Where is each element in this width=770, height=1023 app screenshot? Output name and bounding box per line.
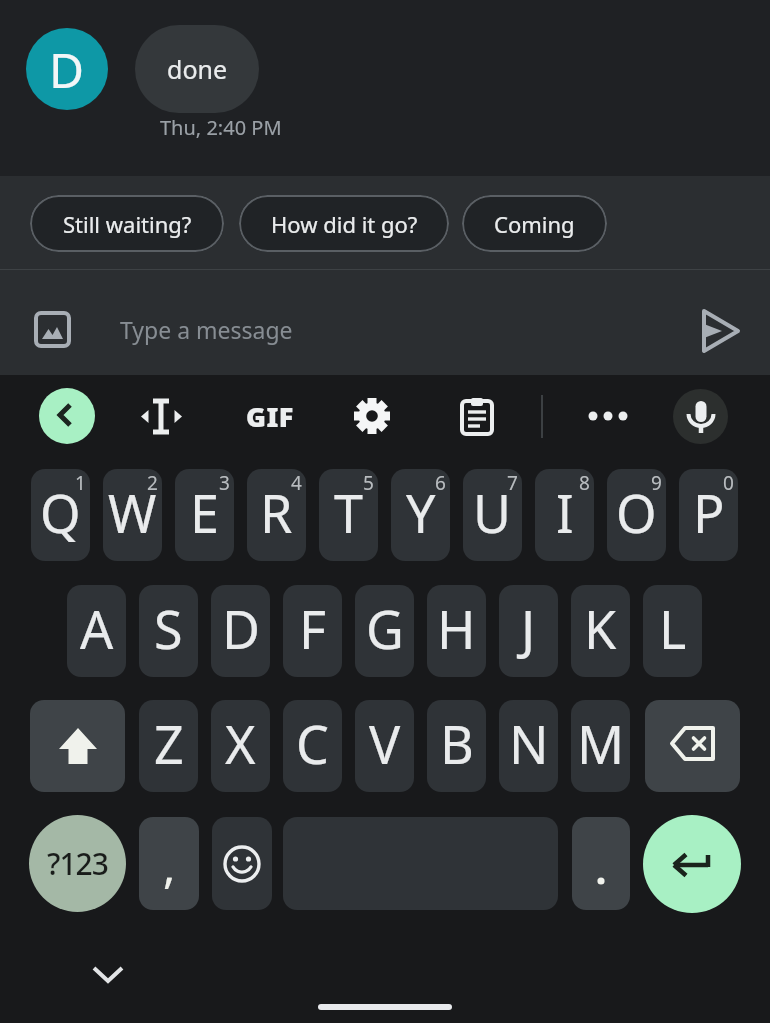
- button[interactable]: [643, 815, 741, 913]
- button[interactable]: [212, 817, 272, 910]
- staticText: done: [167, 52, 228, 86]
- button[interactable]: F: [283, 585, 342, 677]
- staticText: C: [296, 708, 329, 779]
- button[interactable]: G: [355, 585, 414, 677]
- staticText: E: [190, 477, 219, 548]
- button[interactable]: [80, 958, 135, 998]
- button[interactable]: J: [499, 585, 558, 677]
- button[interactable]: U: [463, 469, 522, 561]
- button[interactable]: [30, 700, 125, 792]
- button[interactable]: [24, 301, 81, 358]
- staticText: G: [366, 593, 404, 664]
- staticText: J: [521, 593, 536, 664]
- button[interactable]: Y: [391, 469, 450, 561]
- button[interactable]: X: [211, 700, 270, 792]
- staticText: T: [334, 477, 363, 548]
- button[interactable]: [39, 388, 95, 444]
- button[interactable]: C: [283, 700, 342, 792]
- button[interactable]: W: [103, 469, 162, 561]
- button[interactable]: Coming: [462, 195, 607, 252]
- staticText: S: [154, 593, 183, 664]
- button[interactable]: Z: [139, 700, 198, 792]
- staticText: N: [509, 708, 549, 779]
- staticText: P: [693, 477, 725, 548]
- staticText: 8: [579, 470, 590, 496]
- button[interactable]: L: [643, 585, 702, 677]
- button[interactable]: Q: [31, 469, 90, 561]
- staticText: 5: [363, 470, 374, 496]
- staticText: ?123: [47, 843, 108, 884]
- staticText: 0: [723, 470, 734, 496]
- button[interactable]: S: [139, 585, 198, 677]
- button[interactable]: Still waiting?: [30, 195, 224, 252]
- staticText: Z: [154, 708, 184, 779]
- staticText: 9: [651, 470, 662, 496]
- staticText: V: [369, 708, 401, 779]
- button[interactable]: [572, 817, 630, 910]
- button[interactable]: ?123: [29, 815, 126, 912]
- button[interactable]: [673, 389, 728, 444]
- staticText: D: [222, 593, 260, 664]
- button[interactable]: [581, 389, 635, 443]
- staticText: W: [108, 477, 157, 548]
- button[interactable]: R: [247, 469, 306, 561]
- staticText: 7: [507, 470, 518, 496]
- staticText: U: [473, 477, 512, 548]
- button[interactable]: [690, 302, 746, 358]
- button[interactable]: [135, 389, 189, 443]
- button[interactable]: [450, 389, 504, 443]
- staticText: Still waiting?: [63, 209, 192, 239]
- staticText: 2: [147, 470, 158, 496]
- button[interactable]: E: [175, 469, 234, 561]
- staticText: R: [260, 477, 293, 548]
- button[interactable]: B: [427, 700, 486, 792]
- staticText: K: [584, 593, 617, 664]
- button[interactable]: D: [211, 585, 270, 677]
- button[interactable]: N: [499, 700, 558, 792]
- button[interactable]: H: [427, 585, 486, 677]
- button[interactable]: How did it go?: [239, 195, 449, 252]
- staticText: How did it go?: [271, 209, 418, 239]
- staticText: Thu, 2:40 PM: [160, 114, 282, 141]
- staticText: Coming: [494, 209, 575, 239]
- staticText: 1: [75, 470, 86, 496]
- button[interactable]: T: [319, 469, 378, 561]
- button[interactable]: A: [67, 585, 126, 677]
- staticText: D: [49, 37, 85, 102]
- staticText: O: [616, 477, 657, 548]
- button[interactable]: GIF: [240, 390, 300, 442]
- staticText: X: [225, 708, 256, 779]
- staticText: L: [659, 593, 687, 664]
- button[interactable]: done: [135, 25, 259, 113]
- button[interactable]: M: [571, 700, 630, 792]
- staticText: A: [80, 593, 114, 664]
- staticText: H: [437, 593, 476, 664]
- staticText: Q: [40, 477, 81, 548]
- staticText: 6: [435, 470, 446, 496]
- button[interactable]: ,: [139, 817, 199, 910]
- staticText: B: [440, 708, 474, 779]
- button[interactable]: P: [679, 469, 738, 561]
- staticText: 4: [291, 470, 302, 496]
- staticText: M: [577, 708, 625, 779]
- staticText: F: [299, 593, 326, 664]
- button[interactable]: [345, 389, 399, 443]
- staticText: ,: [163, 834, 176, 897]
- button[interactable]: D: [26, 28, 108, 110]
- staticText: 3: [219, 470, 230, 496]
- button[interactable]: K: [571, 585, 630, 677]
- button[interactable]: V: [355, 700, 414, 792]
- staticText: Type a message: [120, 314, 293, 345]
- staticText: I: [556, 477, 574, 548]
- staticText: GIF: [246, 398, 294, 435]
- staticText: Y: [406, 477, 436, 548]
- button[interactable]: O: [607, 469, 666, 561]
- button[interactable]: I: [535, 469, 594, 561]
- button[interactable]: [645, 700, 740, 792]
